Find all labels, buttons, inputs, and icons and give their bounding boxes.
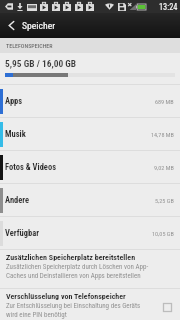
staticText: 5,25 GB xyxy=(155,197,174,204)
other: Back xyxy=(0,13,22,38)
staticText: 689 MB xyxy=(155,98,174,105)
button[interactable]: Musik xyxy=(0,118,180,150)
staticText: Musik xyxy=(5,129,26,139)
staticText: 9,02 MB xyxy=(154,164,174,171)
button[interactable]: Toggle phone storage encryption xyxy=(160,300,174,314)
staticText: 5,95 GB / 16,00 GB xyxy=(5,58,77,69)
staticText: 14,78 MB xyxy=(151,131,174,138)
button[interactable]: Back xyxy=(0,13,180,38)
staticText: Andere xyxy=(5,195,30,205)
staticText: Zusätzlichen Speicherplatz durch Löschen… xyxy=(6,263,149,280)
staticText: 13:24 xyxy=(159,2,178,12)
staticText: Verfügbar xyxy=(5,228,39,238)
button[interactable]: Apps xyxy=(0,85,180,117)
button[interactable]: Verschlüsselung von Telefonspeicher xyxy=(0,289,180,320)
staticText: Verschlüsselung von Telefonspeicher xyxy=(6,292,126,301)
staticText: 10,05 GB xyxy=(152,230,174,237)
staticText: Fotos & Videos xyxy=(5,162,57,172)
staticText: Zur Entschlüsselung bei Einschaltung des… xyxy=(6,302,141,319)
button[interactable]: Verfügbar xyxy=(0,217,180,249)
staticText: TELEFONSPEICHER xyxy=(6,42,53,49)
staticText: Zusätzlichen Speicherplatz bereitstellen xyxy=(6,253,136,262)
button[interactable]: Zusätzlichen Speicherplatz bereitstellen xyxy=(0,250,180,288)
button[interactable]: Fotos & Videos xyxy=(0,151,180,183)
staticText: Speicher xyxy=(22,20,56,31)
button[interactable]: 5,95 GB / 16,00 GB xyxy=(0,53,180,84)
staticText: Apps xyxy=(5,96,23,106)
button[interactable]: Andere xyxy=(0,184,180,216)
